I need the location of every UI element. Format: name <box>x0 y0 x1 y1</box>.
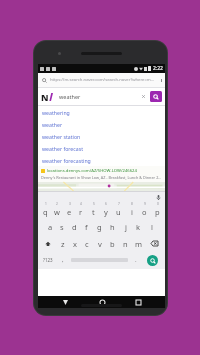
staticText: 4 <box>80 202 82 206</box>
staticText: x <box>73 239 77 249</box>
button[interactable]: s <box>56 218 68 235</box>
button[interactable]: . <box>130 252 141 268</box>
staticText: , <box>62 256 64 264</box>
staticText: weathering <box>42 109 70 116</box>
button[interactable]: Search <box>141 252 164 268</box>
staticText: y <box>104 207 108 217</box>
button[interactable]: 2 <box>51 201 63 218</box>
staticText: u <box>116 207 121 217</box>
staticText: Denny's Restaurant in Show Low, AZ - Bre… <box>41 175 162 180</box>
button[interactable]: 8 <box>125 201 138 218</box>
staticText: b <box>110 239 115 249</box>
button[interactable]: 5 <box>87 201 99 218</box>
button[interactable]: d <box>68 218 80 235</box>
button[interactable]: v <box>93 235 106 252</box>
staticText: g <box>97 222 102 232</box>
button[interactable]: j <box>119 218 132 235</box>
staticText: h <box>110 222 115 232</box>
staticText: l <box>151 222 153 232</box>
button[interactable]: x <box>69 235 81 252</box>
button[interactable]: Recents <box>129 296 147 308</box>
staticText: o <box>142 207 147 217</box>
staticText: 9 <box>144 202 146 206</box>
staticText: weather forecast <box>42 145 84 152</box>
staticText: https://m.search.naver.com/search.naver?… <box>50 77 155 83</box>
button[interactable]: f <box>80 218 93 235</box>
button[interactable]: z <box>57 235 69 252</box>
button[interactable]: Space <box>68 252 130 268</box>
button[interactable]: c <box>81 235 93 252</box>
staticText: d <box>72 222 77 232</box>
button[interactable]: https://m.search.naver.com/search.naver?… <box>38 73 165 87</box>
button[interactable]: More options <box>157 73 165 87</box>
button[interactable]: 1 <box>39 201 51 218</box>
staticText: 0 <box>157 202 159 206</box>
button[interactable]: Search <box>150 91 162 102</box>
button[interactable]: h <box>106 218 119 235</box>
button[interactable]: g <box>93 218 106 235</box>
staticText: 8 <box>131 202 133 206</box>
button[interactable]: weathering <box>38 106 165 118</box>
staticText: 1 <box>45 202 47 206</box>
staticText: weather <box>59 93 141 100</box>
staticText: locations.dennys.com/AZ/SHOW-LOW/246624 <box>47 168 137 174</box>
button[interactable]: 6 <box>99 201 112 218</box>
button[interactable]: weather <box>56 91 148 102</box>
staticText: weather <box>42 121 63 128</box>
button[interactable]: b <box>106 235 119 252</box>
staticText: 5 <box>93 202 95 206</box>
button[interactable]: n <box>119 235 132 252</box>
staticText: i <box>131 207 133 217</box>
button[interactable]: weather <box>38 118 165 130</box>
staticText: q <box>43 207 48 217</box>
staticText: ?123 <box>43 257 53 263</box>
staticText: r <box>79 207 83 217</box>
staticText: t <box>92 207 95 217</box>
button[interactable]: Clear <box>141 94 146 99</box>
staticText: z <box>61 239 65 249</box>
staticText: 2:22 <box>153 65 163 72</box>
staticText: a <box>48 222 53 232</box>
staticText: w <box>54 207 60 217</box>
staticText: p <box>155 207 160 217</box>
button[interactable]: m <box>132 235 145 252</box>
button[interactable]: 3 <box>63 201 75 218</box>
button[interactable]: 4 <box>75 201 87 218</box>
staticText: c <box>85 239 89 249</box>
staticText: 2 <box>56 202 58 206</box>
staticText: weather forecasting <box>42 157 91 164</box>
staticText: weather station <box>42 133 81 140</box>
button[interactable]: Naver home <box>41 91 53 103</box>
staticText: 6 <box>105 202 107 206</box>
staticText: m <box>135 239 143 249</box>
button[interactable]: ?123 <box>39 252 57 268</box>
staticText: n <box>123 239 128 249</box>
staticText: v <box>98 239 102 249</box>
button[interactable]: Home <box>93 296 111 308</box>
staticText: j <box>125 222 127 232</box>
staticText: 7 <box>118 202 120 206</box>
button[interactable]: k <box>132 218 145 235</box>
button[interactable]: l <box>145 218 158 235</box>
button[interactable]: Shift <box>39 235 57 252</box>
button[interactable]: 9 <box>138 201 151 218</box>
staticText: N <box>41 91 49 103</box>
button[interactable]: Back <box>56 296 74 308</box>
button[interactable]: , <box>57 252 68 268</box>
button[interactable]: weather forecasting <box>38 154 165 166</box>
staticText: f <box>85 222 88 232</box>
button[interactable]: a <box>44 218 56 235</box>
button[interactable]: Backspace <box>145 235 164 252</box>
staticText: e <box>67 207 72 217</box>
button[interactable]: Voice input <box>155 194 161 200</box>
staticText: k <box>136 222 141 232</box>
button[interactable]: 7 <box>112 201 125 218</box>
staticText: s <box>60 222 64 232</box>
staticText: . <box>135 256 137 264</box>
button[interactable]: 0 <box>151 201 164 218</box>
button[interactable]: locations.dennys.com/AZ/SHOW-LOW/246624 <box>38 166 165 182</box>
button[interactable]: weather forecast <box>38 142 165 154</box>
button[interactable]: weather station <box>38 130 165 142</box>
staticText: 3 <box>69 202 71 206</box>
